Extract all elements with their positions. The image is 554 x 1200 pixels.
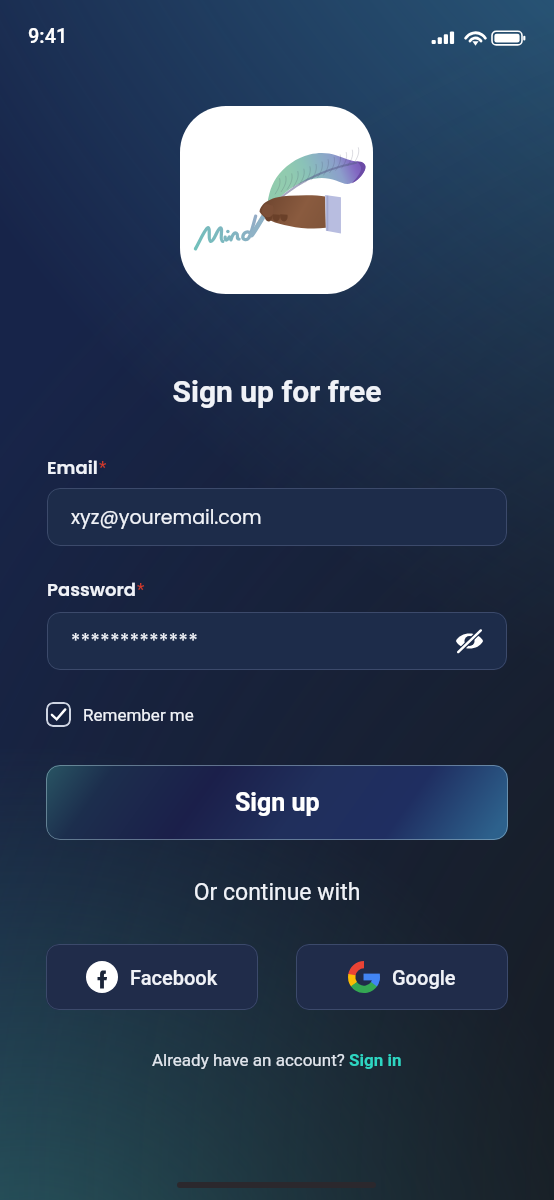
staticText: Already have an account? [152,1050,349,1070]
staticText: Remember me [83,705,194,725]
staticText: Google [392,966,456,989]
staticText: xyz@youremail.com [71,504,262,531]
staticText: Sign up [235,788,320,817]
staticText: Facebook [130,966,218,989]
button[interactable]: Google [296,944,508,1010]
staticText: * [137,580,145,599]
staticText: ************* [71,628,199,655]
staticText: Sign up for free [0,374,554,409]
button[interactable]: Sign in [349,1050,402,1070]
button[interactable]: Facebook [46,944,258,1010]
button[interactable]: Sign up [46,765,508,840]
button[interactable]: Remember me [46,702,194,727]
staticText: Or continue with [0,879,554,906]
button[interactable]: Toggle password visibility [454,626,484,656]
staticText: Password [47,577,136,602]
staticText: Email [47,455,98,480]
staticText: 9:41 [28,24,68,47]
button[interactable]: ************* [47,612,507,670]
staticText: * [99,458,107,477]
button[interactable]: xyz@youremail.com [47,488,507,546]
